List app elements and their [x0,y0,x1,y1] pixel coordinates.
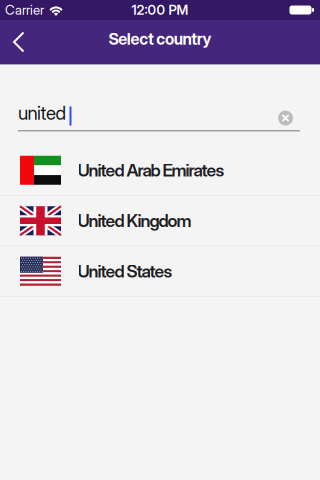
staticText: Carrier [5,2,44,18]
button[interactable]: Back [0,20,44,64]
button[interactable]: Clear text [278,110,293,125]
button[interactable]: United Kingdom [0,196,320,245]
staticText: United States [77,261,172,281]
button[interactable]: United Arab Emirates [0,145,320,195]
staticText: Select country [108,30,211,48]
staticText: United Arab Emirates [77,160,224,180]
staticText: united [18,102,66,124]
staticText: 12:00 PM [131,2,188,18]
button[interactable]: United States [0,246,320,296]
staticText: United Kingdom [77,210,191,231]
